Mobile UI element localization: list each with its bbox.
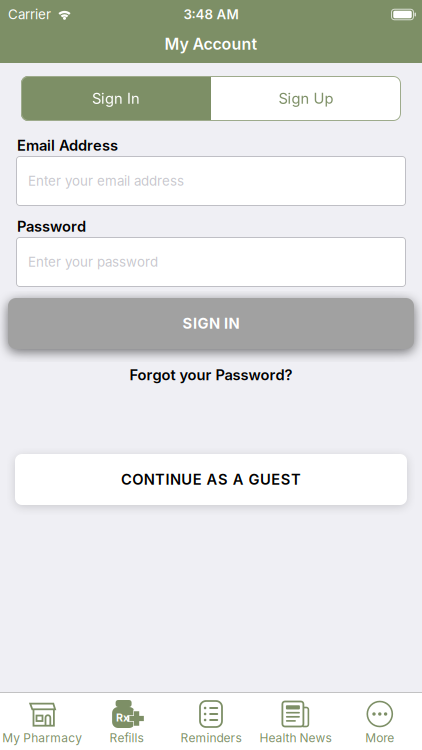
staticText: Forgot your Password?	[129, 366, 292, 384]
button[interactable]: Sign Up	[211, 76, 401, 121]
staticText: More	[365, 731, 394, 745]
staticText: Enter your email address	[28, 173, 184, 189]
staticText: Carrier	[8, 7, 51, 22]
staticText: Sign In	[92, 90, 140, 107]
button[interactable]: SIGN IN	[8, 298, 414, 349]
button[interactable]: Forgot your Password?	[0, 367, 422, 383]
staticText: Refills	[110, 731, 144, 745]
staticText: Password	[17, 218, 86, 235]
button[interactable]: My Pharmacy	[0, 701, 84, 745]
staticText: SIGN IN	[182, 315, 239, 332]
staticText: Email Address	[17, 137, 118, 154]
button[interactable]: Health News	[253, 701, 338, 745]
staticText: My Account	[164, 35, 257, 53]
staticText: 3:48 AM	[183, 7, 238, 22]
staticText: Rx	[116, 711, 129, 724]
staticText: Health News	[259, 731, 331, 745]
button[interactable]: Reminders	[169, 701, 253, 745]
staticText: Sign Up	[278, 90, 333, 107]
button[interactable]: Rx	[84, 701, 169, 745]
button[interactable]: More	[338, 701, 422, 745]
staticText: My Pharmacy	[2, 731, 82, 745]
staticText: Enter your password	[28, 254, 158, 270]
staticText: Reminders	[180, 731, 241, 745]
button[interactable]: Sign In	[21, 76, 211, 121]
staticText: CONTINUE AS A GUEST	[121, 471, 301, 488]
button[interactable]: CONTINUE AS A GUEST	[15, 454, 407, 505]
